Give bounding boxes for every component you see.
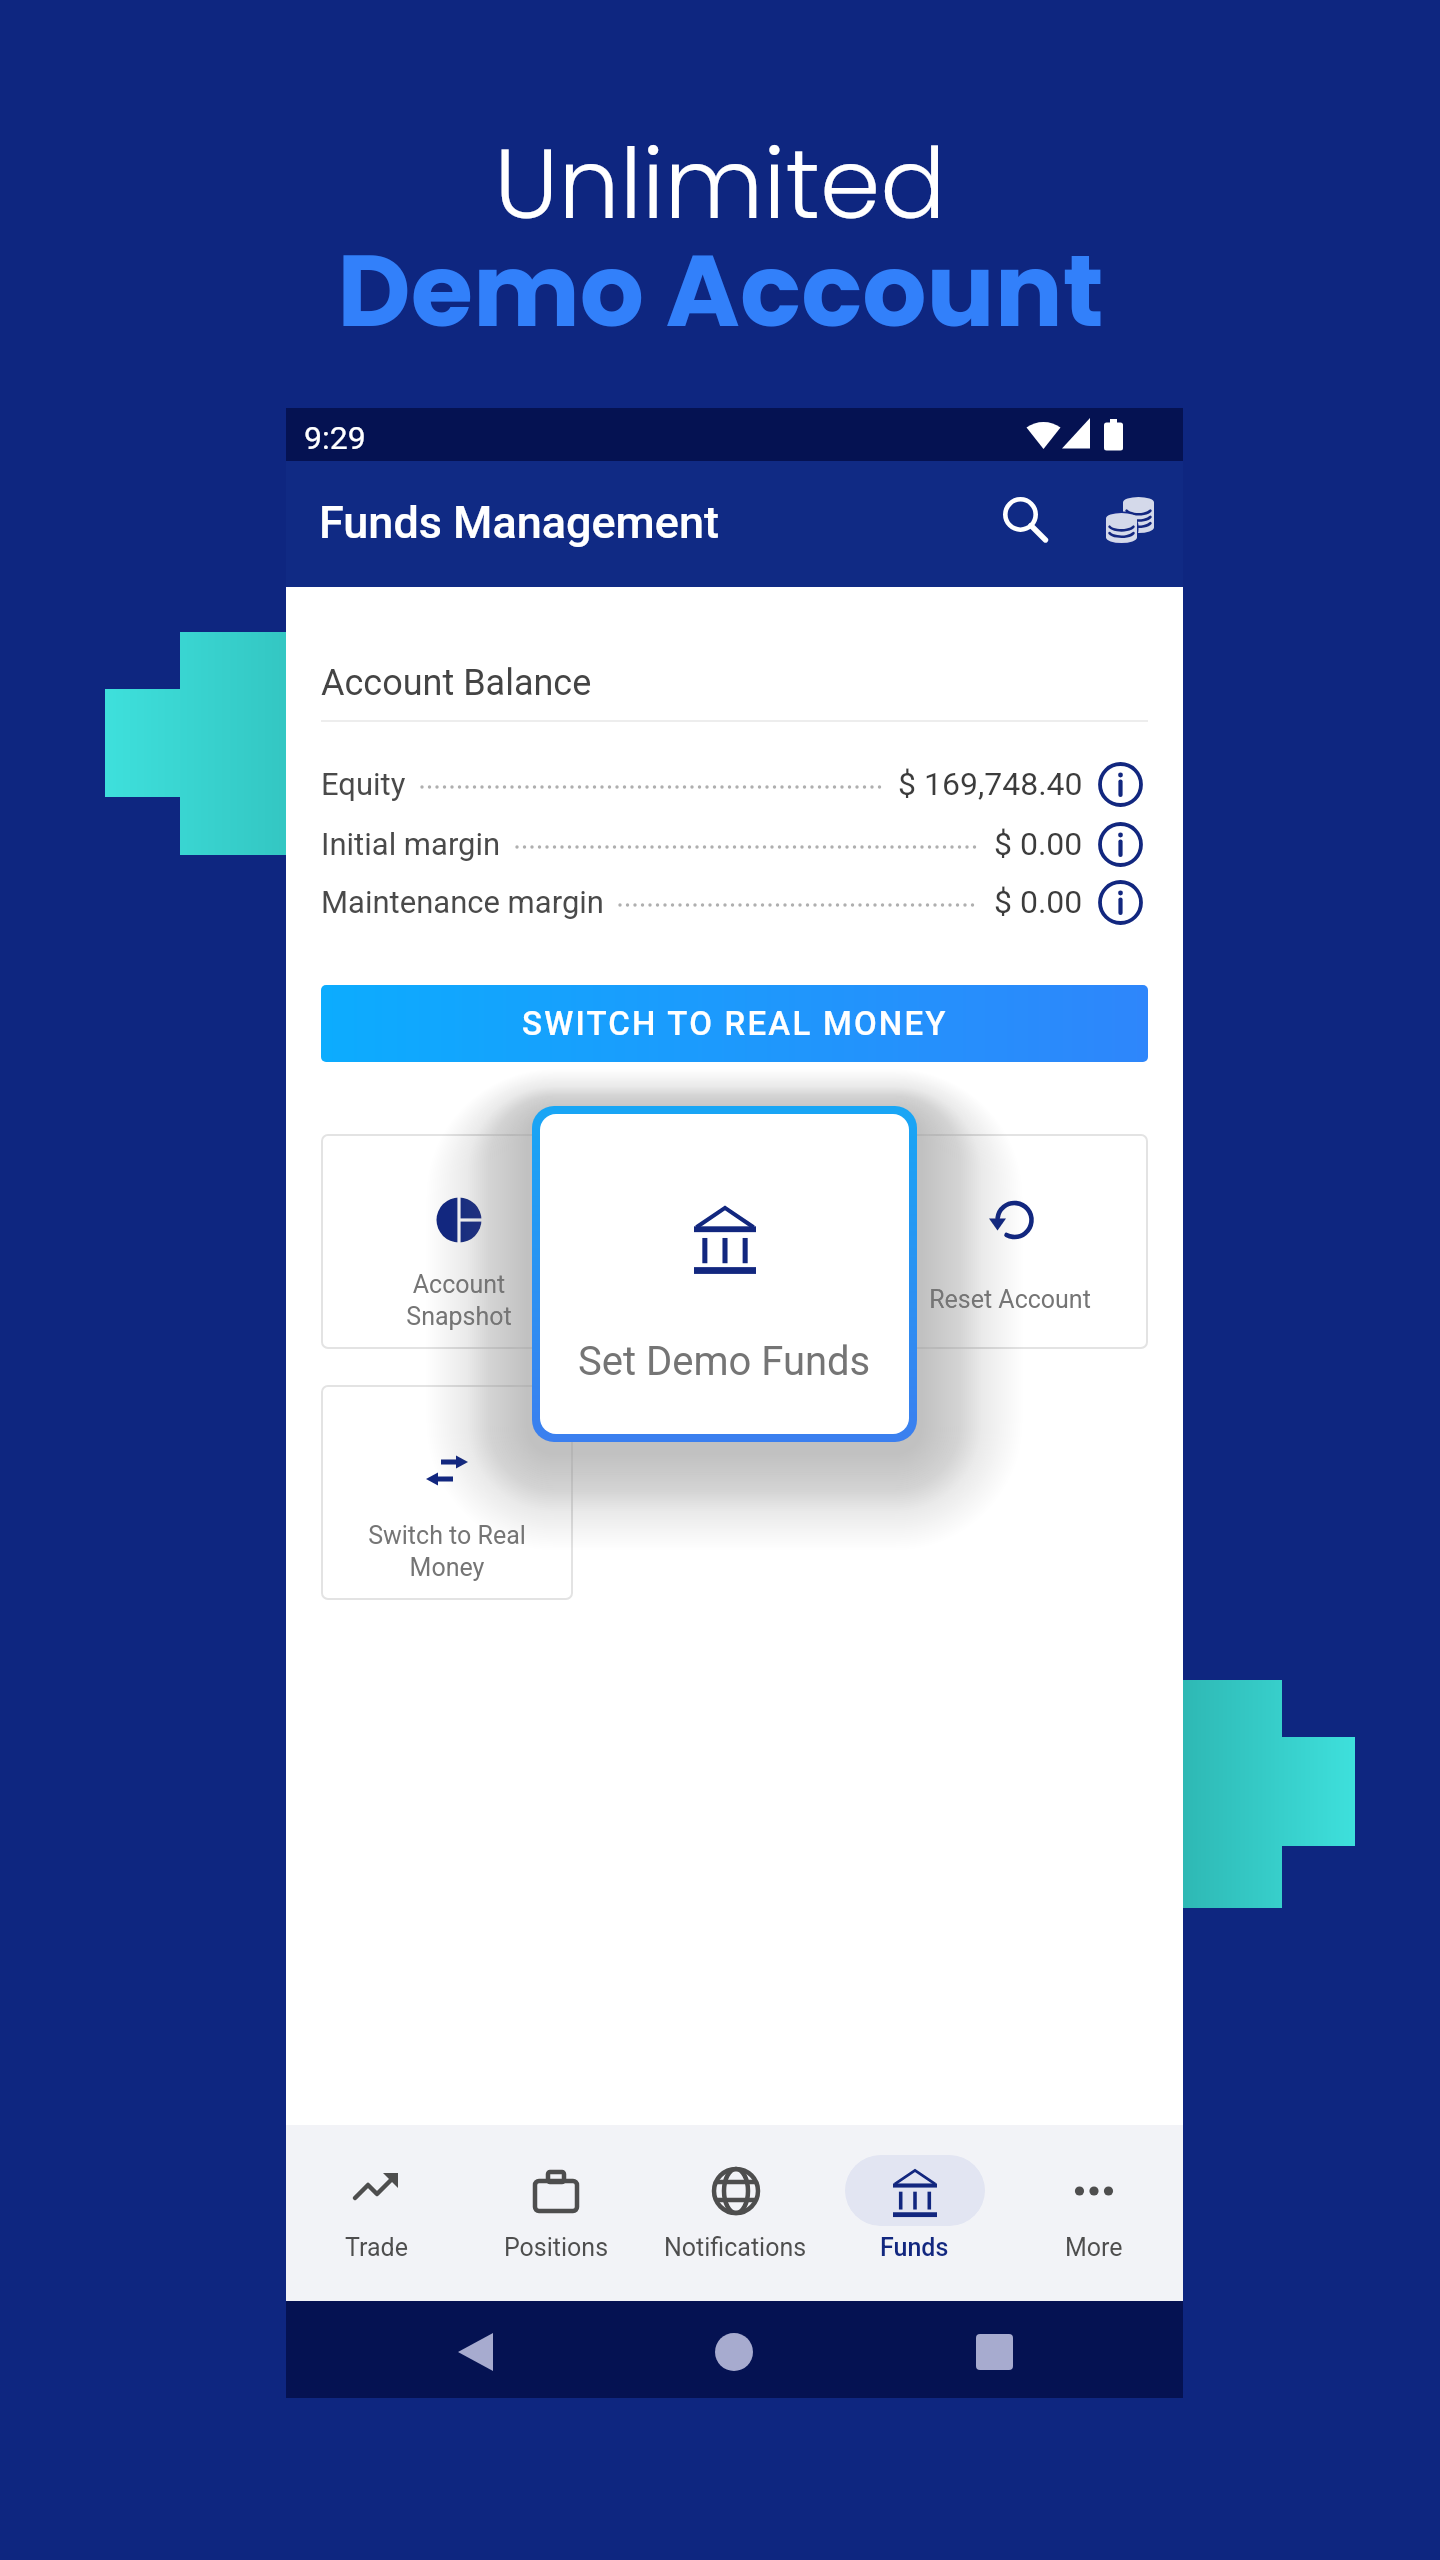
staticText: More: [1065, 2233, 1123, 2262]
button[interactable]: Trade: [286, 2125, 466, 2301]
button[interactable]: Search: [982, 477, 1068, 563]
staticText: Funds Management: [319, 496, 719, 549]
staticText: $ 0.00: [994, 825, 1083, 863]
button[interactable]: Set Demo Funds: [596, 1134, 872, 1349]
button[interactable]: Account Snapshot: [321, 1134, 596, 1349]
staticText: Funds: [880, 2233, 949, 2262]
staticText: Notifications: [664, 2233, 807, 2262]
staticText: Trade: [345, 2233, 408, 2262]
staticText: Unlimited: [494, 116, 946, 252]
staticText: Account Snapshot: [406, 1270, 512, 1331]
button[interactable]: Notifications: [646, 2125, 825, 2301]
button[interactable]: Recent apps: [960, 2318, 1028, 2386]
button[interactable]: Funds: [825, 2125, 1004, 2301]
staticText: Initial margin: [321, 826, 501, 862]
staticText: SWITCH TO REAL MONEY: [522, 1004, 948, 1043]
button[interactable]: Switch to Real Money: [321, 1385, 573, 1600]
staticText: $ 0.00: [994, 883, 1083, 921]
staticText: Set Demo Funds: [578, 1338, 871, 1385]
staticText: 9:29: [304, 419, 366, 457]
button[interactable]: Positions: [466, 2125, 646, 2301]
staticText: Equity: [321, 766, 406, 802]
button[interactable]: Initial margin: [286, 815, 1183, 873]
staticText: Account Balance: [321, 662, 592, 704]
button[interactable]: Equity: [286, 755, 1183, 813]
staticText: Positions: [504, 2233, 609, 2262]
button[interactable]: Maintenance margin: [286, 873, 1183, 931]
button[interactable]: Reset Account: [872, 1134, 1148, 1349]
button[interactable]: Deposit funds: [1085, 475, 1175, 565]
staticText: Maintenance margin: [321, 884, 604, 920]
staticText: Reset Account: [929, 1285, 1091, 1314]
staticText: Switch to Real Money: [368, 1521, 526, 1582]
button[interactable]: SWITCH TO REAL MONEY: [321, 985, 1148, 1062]
button[interactable]: Set Demo Funds: [532, 1106, 917, 1442]
button[interactable]: Home: [700, 2318, 768, 2386]
button[interactable]: More: [1004, 2125, 1183, 2301]
button[interactable]: Back: [441, 2318, 509, 2386]
staticText: Demo Account: [337, 220, 1104, 361]
staticText: $ 169,748.40: [898, 765, 1083, 803]
